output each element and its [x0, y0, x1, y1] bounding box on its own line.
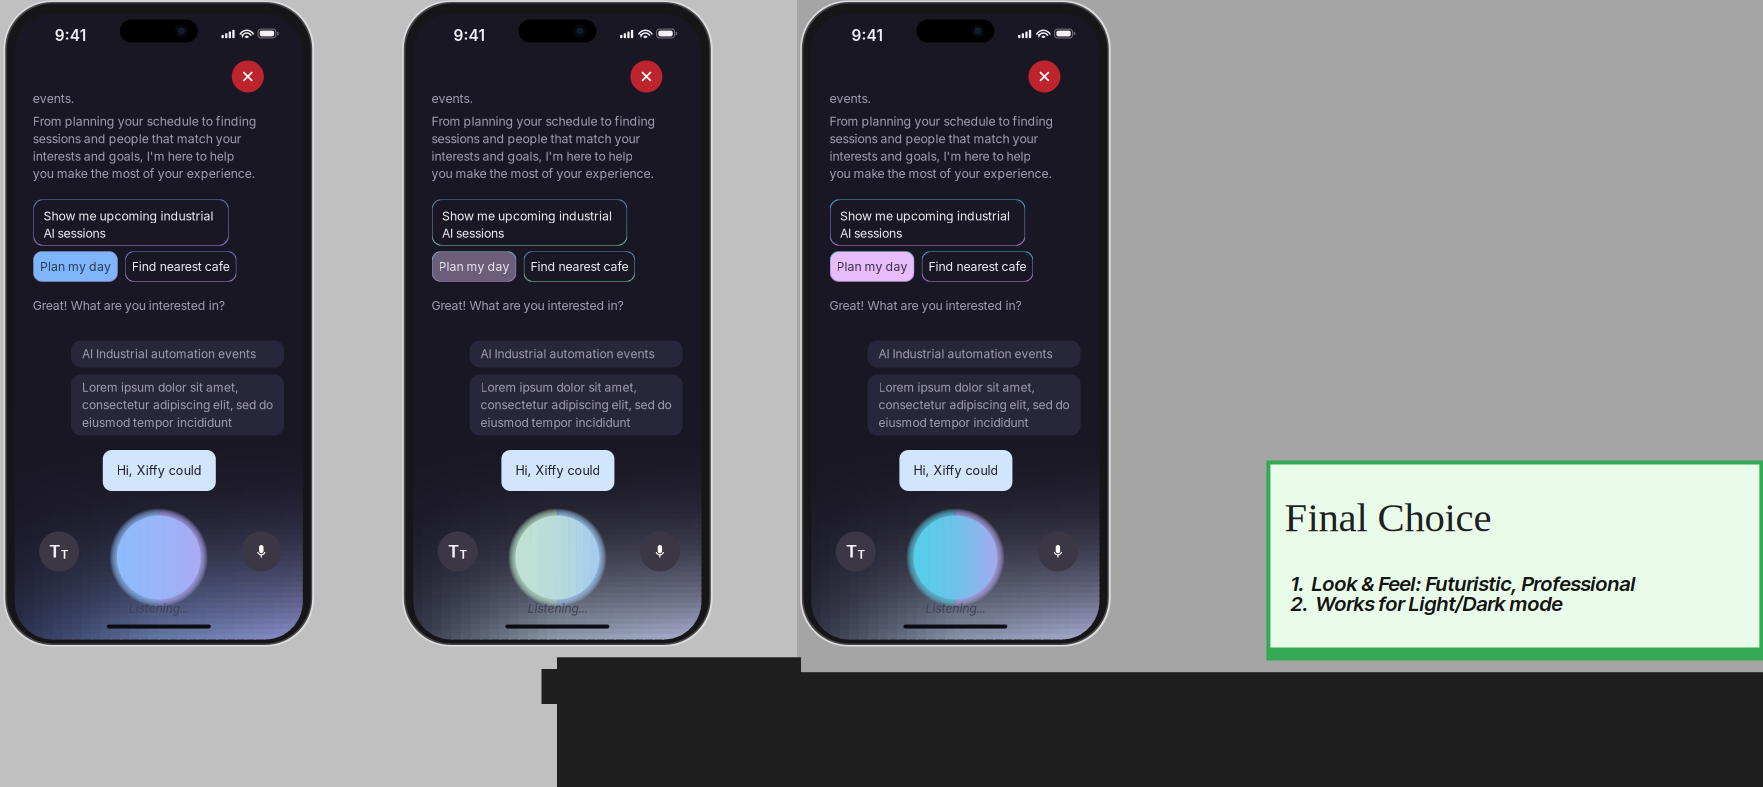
staticText: Find nearest cafe — [132, 259, 230, 274]
button[interactable]: Microphone — [640, 531, 680, 571]
staticText: T — [459, 548, 467, 562]
staticText: T — [857, 548, 865, 562]
staticText: Listening... — [527, 601, 587, 616]
staticText: events. — [431, 91, 473, 106]
staticText: Listening... — [925, 601, 985, 616]
staticText: From planning your schedule to finding s… — [829, 114, 1053, 181]
staticText: 9:41 — [453, 26, 484, 45]
button[interactable]: Show me upcoming industrial AI sessions — [432, 199, 627, 245]
button[interactable]: Plan my day — [33, 251, 117, 281]
staticText: Lorem ipsum dolor sit amet, consectetur … — [481, 380, 672, 430]
staticText: AI Industrial automation events — [879, 347, 1053, 361]
button[interactable]: Close — [630, 60, 662, 92]
staticText: Plan my day — [439, 259, 510, 274]
staticText: Listening... — [129, 601, 189, 616]
staticText: Great! What are you interested in? — [431, 298, 623, 313]
staticText: events. — [33, 91, 75, 106]
staticText: AI Industrial automation events — [481, 347, 655, 361]
staticText: Hi, Xiffy could — [117, 463, 202, 478]
button[interactable]: Microphone — [241, 531, 281, 571]
staticText: 1. Look & Feel: Futuristic, Professional — [1290, 571, 1635, 596]
staticText: Find nearest cafe — [530, 259, 628, 274]
button[interactable]: Find nearest cafe — [125, 251, 236, 281]
staticText: Show me upcoming industrial AI sessions — [840, 208, 1010, 241]
staticText: Plan my day — [837, 259, 908, 274]
button[interactable]: Close — [232, 60, 264, 92]
button[interactable]: Show me upcoming industrial AI sessions — [33, 199, 228, 245]
staticText: Hi, Xiffy could — [515, 463, 600, 478]
staticText: Final Choice — [1284, 495, 1491, 540]
staticText: T — [846, 541, 857, 562]
button[interactable]: Text size — [438, 531, 478, 571]
button[interactable]: Text size — [39, 531, 79, 571]
staticText: Plan my day — [40, 259, 111, 274]
button[interactable]: Text size — [836, 531, 876, 571]
staticText: Great! What are you interested in? — [33, 298, 225, 313]
button[interactable]: Show me upcoming industrial AI sessions — [830, 199, 1025, 245]
staticText: Lorem ipsum dolor sit amet, consectetur … — [879, 380, 1070, 430]
button[interactable]: Close — [1028, 60, 1060, 92]
staticText: Great! What are you interested in? — [829, 298, 1021, 313]
button[interactable]: Find nearest cafe — [524, 251, 635, 281]
staticText: From planning your schedule to finding s… — [431, 114, 655, 181]
button[interactable]: Plan my day — [830, 251, 914, 281]
staticText: Find nearest cafe — [928, 259, 1026, 274]
button[interactable]: Find nearest cafe — [922, 251, 1033, 281]
button[interactable]: Plan my day — [432, 251, 516, 281]
staticText: 2. Works for Light/Dark mode — [1290, 591, 1562, 616]
staticText: T — [61, 548, 69, 562]
staticText: Show me upcoming industrial AI sessions — [43, 208, 213, 241]
staticText: T — [448, 541, 459, 562]
staticText: From planning your schedule to finding s… — [33, 114, 257, 181]
staticText: 9:41 — [851, 26, 882, 45]
staticText: Lorem ipsum dolor sit amet, consectetur … — [82, 380, 273, 430]
staticText: 9:41 — [55, 26, 86, 45]
staticText: Show me upcoming industrial AI sessions — [442, 208, 612, 241]
staticText: T — [49, 541, 60, 562]
staticText: events. — [829, 91, 871, 106]
staticText: AI Industrial automation events — [82, 347, 256, 361]
staticText: Hi, Xiffy could — [913, 463, 998, 478]
button[interactable]: Microphone — [1038, 531, 1078, 571]
